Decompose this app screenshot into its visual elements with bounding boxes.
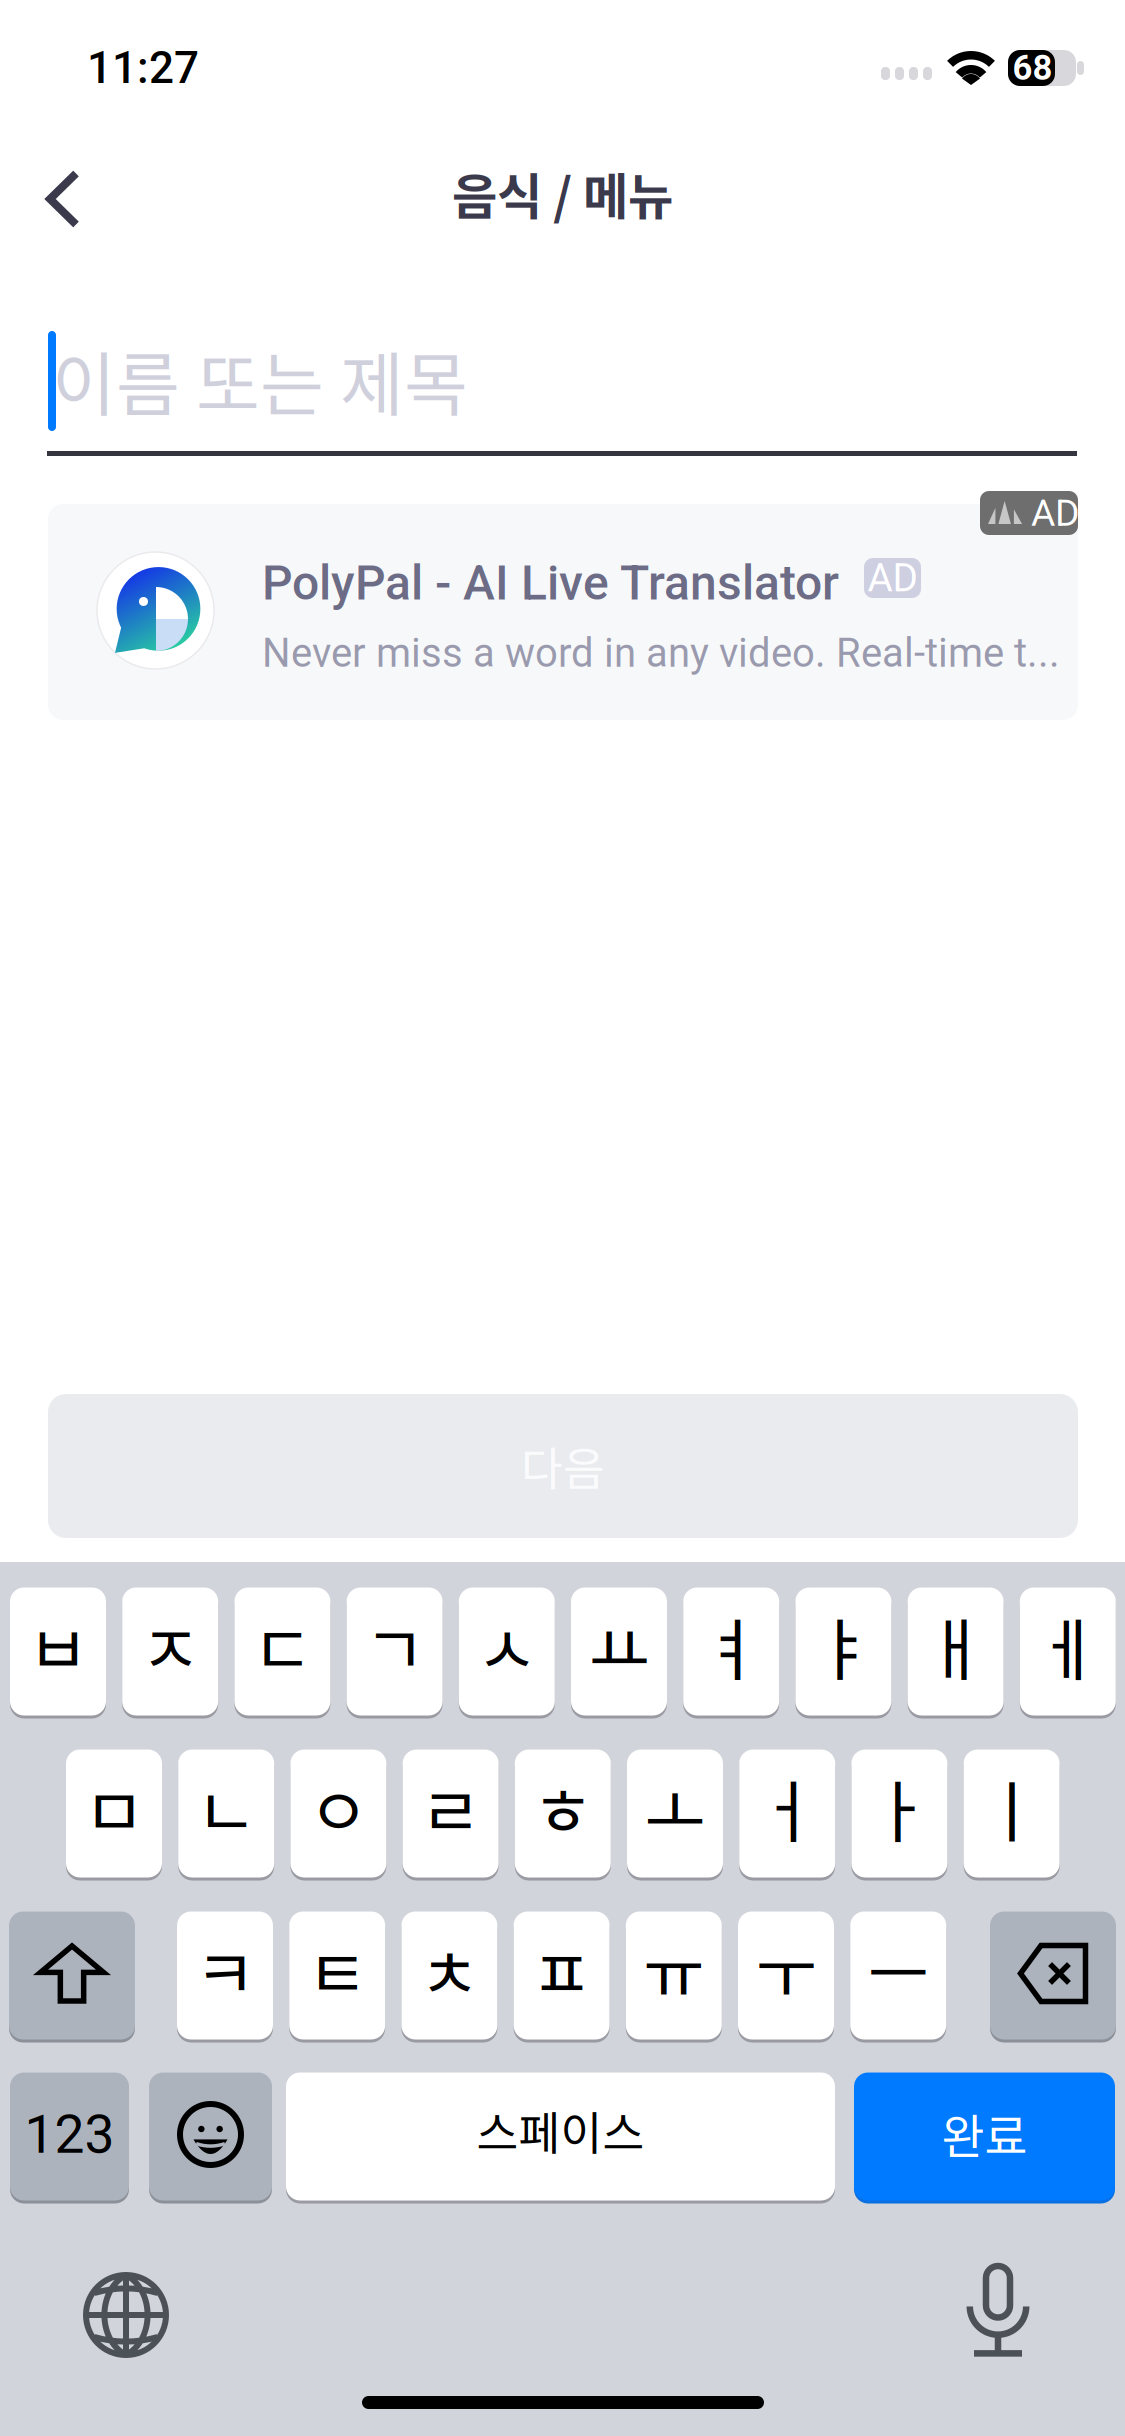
staticText: ㄴ — [196, 1759, 257, 1856]
staticText: ㄷ — [252, 1597, 313, 1694]
staticText: ㅣ — [981, 1759, 1042, 1856]
staticText: ㅠ — [643, 1921, 704, 2018]
button[interactable] — [149, 2071, 272, 2202]
staticText: ㄱ — [364, 1597, 425, 1694]
button[interactable]: ㅎ — [515, 1748, 611, 1879]
button[interactable]: ㅍ — [514, 1910, 610, 2041]
button[interactable]: ㄷ — [234, 1586, 330, 1717]
button[interactable]: ㅗ — [627, 1748, 723, 1879]
button[interactable]: ㅛ — [571, 1586, 667, 1717]
button[interactable]: ㄴ — [178, 1748, 274, 1879]
button[interactable]: ㅇ — [290, 1748, 386, 1879]
staticText: AD — [867, 555, 917, 601]
staticText: ㅌ — [307, 1921, 368, 2018]
button[interactable]: ㅕ — [683, 1586, 779, 1717]
button[interactable]: ㄱ — [347, 1586, 443, 1717]
button[interactable]: PolyPal - AI Live Translator — [48, 504, 1078, 720]
staticText: ㅅ — [476, 1597, 537, 1694]
button[interactable]: 123 — [10, 2071, 129, 2202]
staticText: ㅓ — [757, 1759, 818, 1856]
staticText: ㅁ — [83, 1759, 144, 1856]
staticText: AD — [1031, 491, 1080, 535]
staticText: 68 — [1012, 48, 1052, 88]
staticText: 다음 — [521, 1433, 605, 1499]
button[interactable]: 스페이스 — [286, 2071, 835, 2202]
staticText: ㅊ — [419, 1921, 480, 2018]
button[interactable]: Dictation — [928, 2242, 1068, 2382]
staticText: 11:27 — [87, 42, 199, 94]
button[interactable]: ㅏ — [851, 1748, 947, 1879]
staticText: ㅏ — [869, 1759, 930, 1856]
staticText: PolyPal - AI Live Translator — [262, 555, 839, 611]
staticText: ㅗ — [644, 1759, 705, 1856]
button[interactable]: ㅂ — [10, 1586, 106, 1717]
staticText: ㄹ — [420, 1759, 481, 1856]
staticText: ㅑ — [813, 1597, 874, 1694]
staticText: ㅂ — [27, 1597, 88, 1694]
staticText: ㅋ — [194, 1921, 255, 2018]
button[interactable]: ㅅ — [459, 1586, 555, 1717]
button[interactable]: 완료 — [854, 2071, 1115, 2202]
staticText: 이름 또는 제목 — [52, 330, 468, 430]
button[interactable]: ㅓ — [739, 1748, 835, 1879]
staticText: ㅡ — [868, 1921, 929, 2018]
button[interactable]: ㅁ — [66, 1748, 162, 1879]
staticText: ㅛ — [588, 1597, 649, 1694]
button[interactable]: ㅋ — [177, 1910, 273, 2041]
button[interactable]: ㄹ — [403, 1748, 499, 1879]
staticText: ㅈ — [140, 1597, 201, 1694]
staticText: ㅜ — [755, 1921, 816, 2018]
staticText: 스페이스 — [476, 2098, 644, 2163]
staticText: 완료 — [941, 2100, 1027, 2167]
button[interactable]: ㅔ — [1020, 1586, 1116, 1717]
button[interactable]: ㅑ — [795, 1586, 891, 1717]
button[interactable]: ㅣ — [964, 1748, 1060, 1879]
button[interactable] — [9, 1910, 135, 2041]
staticText: 음식 / 메뉴 — [452, 157, 673, 229]
button[interactable]: ㅐ — [908, 1586, 1004, 1717]
staticText: ㅇ — [308, 1759, 369, 1856]
staticText: ㅍ — [531, 1921, 592, 2018]
button[interactable]: ㅊ — [401, 1910, 497, 2041]
button[interactable]: ㅠ — [626, 1910, 722, 2041]
button[interactable] — [990, 1910, 1116, 2041]
staticText: ㅔ — [1037, 1597, 1098, 1694]
staticText: ㅕ — [701, 1597, 762, 1694]
button[interactable]: ㅡ — [850, 1910, 946, 2041]
staticText: 123 — [24, 2103, 114, 2166]
button[interactable]: Back — [17, 149, 109, 249]
staticText: Never miss a word in any video. Real-tim… — [262, 630, 1060, 676]
staticText: ㅎ — [532, 1759, 593, 1856]
button[interactable]: Switch keyboard — [56, 2245, 196, 2385]
button[interactable]: ㅈ — [122, 1586, 218, 1717]
button[interactable]: ㅌ — [289, 1910, 385, 2041]
staticText: ㅐ — [925, 1597, 986, 1694]
button[interactable]: ㅜ — [738, 1910, 834, 2041]
